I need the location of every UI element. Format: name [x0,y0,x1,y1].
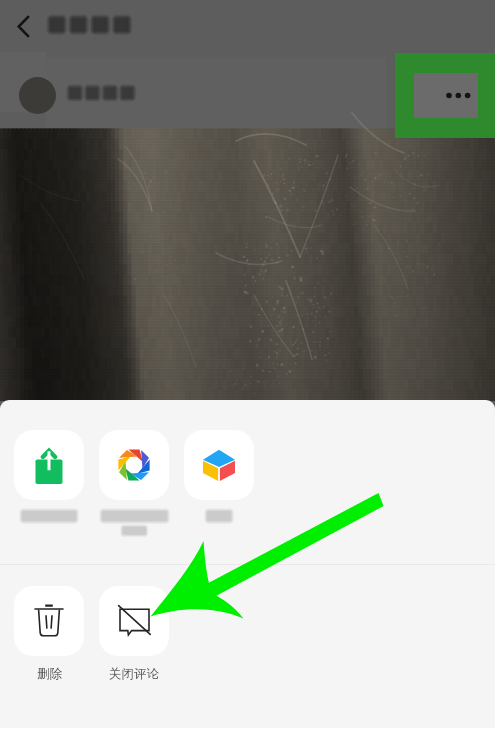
button[interactable]: 关闭评论 [99,586,169,682]
button[interactable]: Avatar [19,77,56,114]
button[interactable]: Share [99,430,169,537]
button[interactable]: Back [5,8,41,44]
button[interactable]: Share [14,430,84,524]
staticText: 删除 [37,666,62,682]
staticText: 关闭评论 [109,666,159,682]
button[interactable]: 删除 [14,586,84,682]
button[interactable]: Share [184,430,254,524]
